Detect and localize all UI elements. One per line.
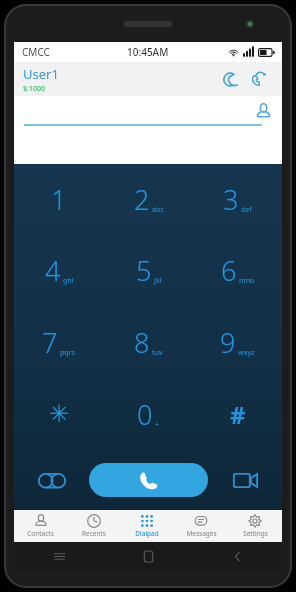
staticText: pqrs: [60, 348, 76, 358]
button[interactable]: 7: [14, 306, 104, 378]
staticText: $:1000: [23, 84, 45, 94]
staticText: #: [230, 398, 246, 431]
staticText: User1: [23, 65, 59, 83]
staticText: CMCC: [22, 45, 50, 59]
staticText: 5: [136, 252, 152, 289]
staticText: 9: [220, 324, 236, 361]
button[interactable]: Back: [193, 542, 282, 570]
staticText: 4: [45, 252, 61, 289]
staticText: 0: [137, 396, 153, 433]
staticText: jkl: [154, 276, 162, 286]
staticText: Contacts: [27, 529, 54, 538]
button[interactable]: 1: [14, 164, 104, 235]
button[interactable]: 6: [193, 235, 282, 306]
staticText: 6: [221, 252, 237, 289]
button[interactable]: 5: [104, 235, 193, 306]
button[interactable]: 4: [14, 235, 104, 306]
staticText: 7: [42, 324, 58, 361]
button[interactable]: User1: [23, 65, 215, 94]
staticText: Settings: [243, 529, 268, 538]
staticText: 1: [51, 181, 67, 218]
button[interactable]: Settings: [228, 510, 282, 542]
staticText: mno: [239, 276, 255, 286]
button[interactable]: Messages: [174, 510, 228, 542]
button[interactable]: Voicemail: [14, 450, 89, 510]
staticText: def: [241, 205, 252, 215]
staticText: ghi: [63, 276, 74, 286]
staticText: ✳: [49, 400, 70, 428]
button[interactable]: Call forwarding: [245, 65, 273, 93]
staticText: 10:45AM: [127, 45, 169, 59]
button[interactable]: ✳: [14, 378, 104, 450]
button[interactable]: 8: [104, 306, 193, 378]
button[interactable]: 9: [193, 306, 282, 378]
staticText: 3: [223, 181, 239, 218]
staticText: +: [155, 420, 160, 430]
button[interactable]: Menu: [14, 542, 104, 570]
staticText: 2: [134, 181, 150, 218]
staticText: Recents: [82, 529, 106, 538]
button[interactable]: 2: [104, 164, 193, 235]
button[interactable]: Home: [104, 542, 193, 570]
button[interactable]: Call: [89, 463, 208, 497]
button[interactable]: 0: [104, 378, 193, 450]
staticText: 8: [134, 324, 150, 361]
staticText: wxyz: [238, 348, 255, 358]
button[interactable]: Contacts: [14, 510, 67, 542]
button[interactable]: Recents: [67, 510, 120, 542]
staticText: abc: [152, 205, 164, 215]
button[interactable]: Add contact: [250, 98, 276, 124]
staticText: tuv: [152, 348, 163, 358]
staticText: Dialpad: [135, 529, 159, 538]
button[interactable]: Video call: [208, 450, 282, 510]
button[interactable]: Do not disturb: [215, 65, 243, 93]
button[interactable]: Dialpad: [120, 510, 174, 542]
staticText: Messages: [186, 529, 217, 538]
button[interactable]: #: [193, 378, 282, 450]
button[interactable]: 3: [193, 164, 282, 235]
